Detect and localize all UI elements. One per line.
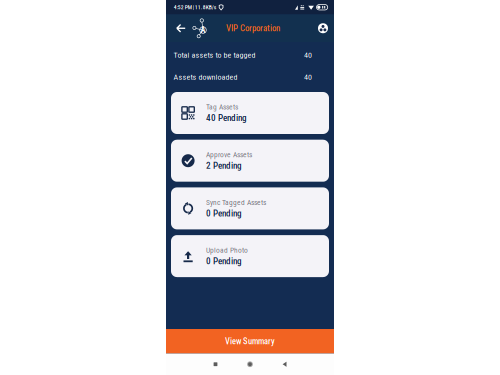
- button[interactable]: Tag Assets: [171, 92, 329, 134]
- button[interactable]: Back: [172, 15, 190, 41]
- button[interactable]: Recents: [198, 353, 233, 375]
- button[interactable]: Account: [315, 18, 331, 38]
- staticText: Assets downloaded: [173, 72, 237, 82]
- button[interactable]: Back: [267, 353, 302, 375]
- button[interactable]: Approve Assets: [171, 140, 329, 182]
- staticText: VIP Corporation: [226, 23, 280, 33]
- staticText: 4:52 PM | 11.8KB/s: [174, 4, 217, 11]
- button[interactable]: Upload Photo: [171, 235, 329, 277]
- staticText: Sync Tagged Assets: [206, 198, 266, 207]
- staticText: View Summary: [225, 336, 275, 346]
- staticText: Upload Photo: [206, 246, 248, 254]
- button[interactable]: Sync Tagged Assets: [171, 187, 329, 229]
- staticText: 40 Pending: [206, 113, 247, 123]
- staticText: Approve Assets: [206, 150, 252, 159]
- button[interactable]: View Summary: [166, 329, 334, 353]
- staticText: 40: [304, 50, 312, 60]
- staticText: 0 Pending: [206, 208, 242, 219]
- staticText: Tag Assets: [206, 103, 238, 111]
- staticText: A: [200, 25, 205, 35]
- staticText: 2 Pending: [206, 160, 242, 171]
- staticText: 40: [304, 72, 312, 82]
- staticText: 0 Pending: [206, 256, 242, 266]
- button[interactable]: Home: [233, 353, 267, 375]
- staticText: Total assets to be tagged: [173, 50, 255, 60]
